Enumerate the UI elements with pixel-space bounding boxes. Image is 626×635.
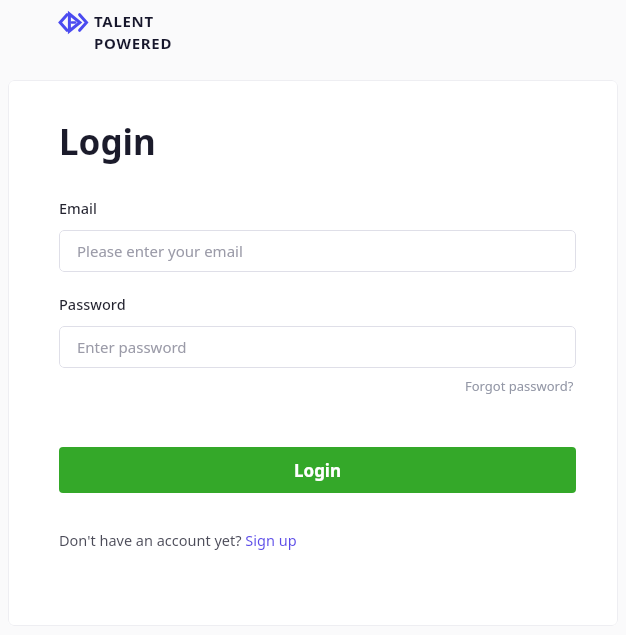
staticText: Login: [294, 459, 342, 482]
staticText: POWERED: [94, 33, 173, 53]
button[interactable]: Please enter your email: [59, 230, 576, 272]
button[interactable]: Don't have an account yet? Sign up: [59, 530, 297, 550]
staticText: Password: [59, 294, 126, 314]
button[interactable]: Forgot password?: [463, 374, 576, 398]
button[interactable]: Enter password: [59, 326, 576, 368]
staticText: Email: [59, 198, 97, 218]
button[interactable]: Login: [59, 447, 576, 493]
button[interactable]: Talent Powered logo: [58, 11, 173, 53]
staticText: Forgot password?: [465, 377, 574, 395]
staticText: TALENT: [94, 11, 154, 31]
staticText: Please enter your email: [77, 241, 243, 261]
staticText: Don't have an account yet? Sign up: [59, 530, 297, 550]
staticText: Enter password: [77, 337, 187, 357]
staticText: Login: [59, 118, 156, 166]
